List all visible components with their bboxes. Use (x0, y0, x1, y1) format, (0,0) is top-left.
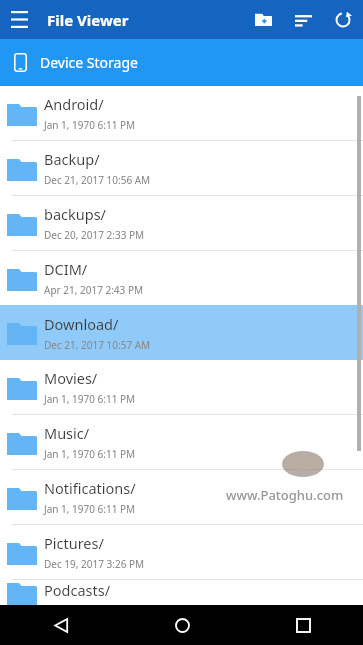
staticText: Dec 20, 2017 2:33 PM (44, 228, 145, 242)
button[interactable]: New folder (243, 0, 283, 39)
button[interactable]: Backup/ (0, 141, 363, 195)
button[interactable]: Back (39, 605, 83, 645)
staticText: Backup/ (44, 149, 100, 169)
button[interactable]: Sort (283, 0, 323, 39)
staticText: Notifications/ (44, 478, 136, 498)
button[interactable]: Refresh (323, 0, 363, 39)
staticText: Dec 19, 2017 3:26 PM (44, 557, 145, 571)
staticText: Jan 1, 1970 6:11 PM (44, 447, 136, 461)
button[interactable]: Android/ (0, 86, 363, 140)
staticText: backups/ (44, 204, 106, 224)
button[interactable]: Download/ (0, 305, 363, 360)
staticText: Podcasts/ (44, 580, 111, 600)
staticText: www.Patoghu.com (226, 486, 344, 504)
button[interactable]: Music/ (0, 415, 363, 469)
button[interactable]: Menu (0, 0, 39, 39)
staticText: Android/ (44, 94, 104, 114)
button[interactable]: Home (160, 605, 204, 645)
staticText: Jan 1, 1970 6:11 PM (44, 392, 136, 406)
staticText: Apr 21, 2017 2:43 PM (44, 283, 144, 297)
staticText: Device Storage (40, 53, 138, 72)
button[interactable]: Podcasts/ (0, 580, 363, 605)
staticText: Movies/ (44, 368, 98, 388)
button[interactable]: Movies/ (0, 360, 363, 414)
button[interactable]: Recent apps (281, 605, 325, 645)
staticText: Download/ (44, 314, 119, 334)
staticText: DCIM/ (44, 259, 88, 279)
button[interactable]: Device Storage (0, 39, 363, 86)
staticText: Music/ (44, 423, 90, 443)
button[interactable]: DCIM/ (0, 251, 363, 305)
button[interactable]: Notifications/ (0, 470, 363, 524)
staticText: Dec 21, 2017 10:57 AM (44, 338, 151, 352)
button[interactable]: Pictures/ (0, 525, 363, 579)
staticText: Jan 1, 1970 6:11 PM (44, 502, 136, 516)
staticText: Jan 1, 1970 6:11 PM (44, 118, 136, 132)
button[interactable]: backups/ (0, 196, 363, 250)
staticText: Pictures/ (44, 533, 104, 553)
staticText: File Viewer (47, 10, 129, 30)
staticText: Dec 21, 2017 10:56 AM (44, 173, 151, 187)
